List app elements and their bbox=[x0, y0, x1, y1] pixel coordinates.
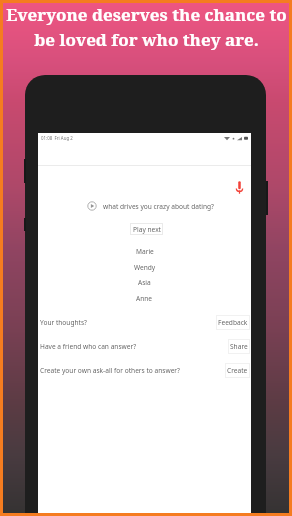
staticText: Share bbox=[230, 342, 248, 351]
button[interactable]: Share bbox=[228, 339, 250, 354]
staticText: Create your own ask-all for others to an… bbox=[40, 366, 180, 375]
button[interactable]: Voice search bbox=[233, 181, 246, 194]
staticText: Create bbox=[227, 366, 248, 375]
staticText: Your thoughts? bbox=[40, 318, 87, 327]
staticText: what drives you crazy about dating? bbox=[103, 202, 214, 211]
staticText: Marie bbox=[136, 247, 154, 256]
staticText: 01:08 Fri Aug 2 bbox=[41, 135, 73, 141]
staticText: Play next bbox=[133, 225, 161, 234]
button[interactable]: Asia bbox=[38, 276, 251, 289]
staticText: Feedback bbox=[218, 318, 248, 327]
staticText: Everyone deserves the chance to bbox=[6, 3, 287, 26]
button[interactable]: Create bbox=[225, 363, 250, 378]
button[interactable]: Feedback bbox=[216, 315, 250, 330]
button[interactable]: Marie bbox=[38, 245, 251, 258]
button[interactable]: Play next bbox=[130, 223, 163, 235]
staticText: be loved for who they are. bbox=[34, 28, 259, 51]
staticText: Have a friend who can answer? bbox=[40, 342, 137, 351]
staticText: Wendy bbox=[134, 263, 156, 272]
staticText: Anne bbox=[136, 294, 153, 303]
staticText: Asia bbox=[138, 278, 151, 287]
button[interactable]: Anne bbox=[38, 292, 251, 305]
button[interactable]: Wendy bbox=[38, 261, 251, 274]
